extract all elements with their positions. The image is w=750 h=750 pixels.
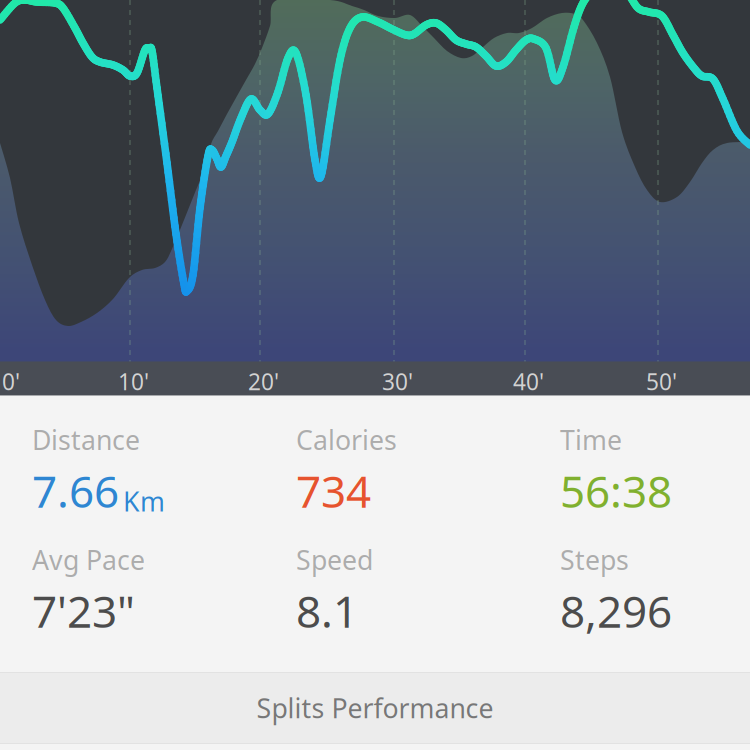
staticText: 734 xyxy=(296,461,371,520)
staticText: 50' xyxy=(646,366,677,396)
staticText: 7.66 xyxy=(32,461,119,520)
staticText: 56:38 xyxy=(560,461,672,520)
button[interactable]: Distance xyxy=(32,422,296,542)
staticText: Steps xyxy=(560,542,629,577)
staticText: Speed xyxy=(296,542,373,577)
button[interactable]: Avg Pace xyxy=(32,542,296,662)
staticText: 0' xyxy=(2,366,20,396)
button[interactable]: Splits Performance xyxy=(0,672,750,744)
staticText: Time xyxy=(560,422,622,457)
button[interactable]: Time xyxy=(560,422,750,542)
staticText: 8,296 xyxy=(560,581,672,640)
staticText: 8.1 xyxy=(296,581,358,640)
staticText: 30' xyxy=(382,366,413,396)
button[interactable]: Steps xyxy=(560,542,750,662)
button[interactable]: Calories xyxy=(296,422,560,542)
staticText: 10' xyxy=(118,366,149,396)
staticText: Avg Pace xyxy=(32,542,145,577)
staticText: Distance xyxy=(32,422,140,457)
staticText: Km xyxy=(123,483,165,519)
staticText: 40' xyxy=(513,366,544,396)
button[interactable]: Speed xyxy=(296,542,560,662)
staticText: 20' xyxy=(248,366,279,396)
staticText: Splits Performance xyxy=(256,690,493,726)
staticText: Calories xyxy=(296,422,397,457)
staticText: 7'23" xyxy=(32,581,135,640)
